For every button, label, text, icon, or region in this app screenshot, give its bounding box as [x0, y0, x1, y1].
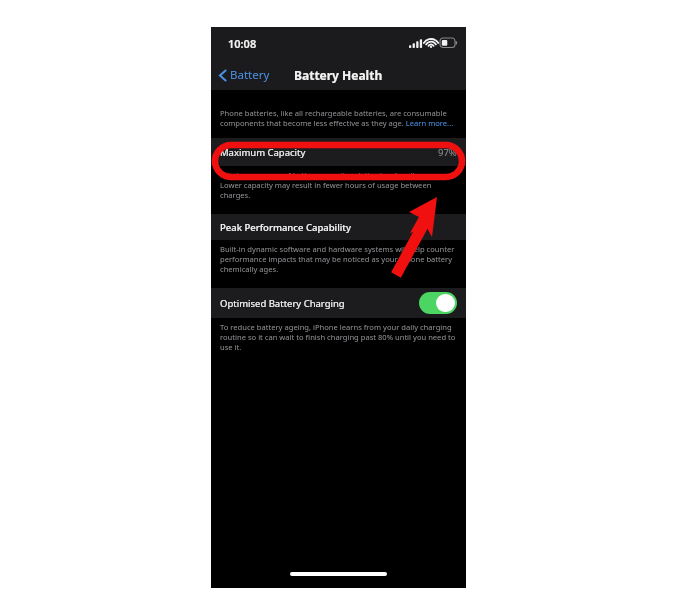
staticText: 10:08 [228, 36, 257, 51]
button[interactable]: Peak Performance Capability [211, 214, 466, 240]
staticText: Battery [230, 67, 270, 83]
staticText: Optimised Battery Charging [220, 297, 345, 310]
staticText: Phone batteries, like all rechargeable b… [220, 108, 457, 128]
staticText: Built-in dynamic software and hardware s… [220, 244, 457, 274]
button[interactable]: Battery [211, 63, 278, 87]
button[interactable]: Maximum Capacity [211, 138, 466, 166]
staticText: To reduce battery ageing, iPhone learns … [220, 322, 457, 352]
staticText: Peak Performance Capability [220, 221, 351, 234]
staticText: 97% [438, 146, 457, 159]
button[interactable]: Optimised Battery Charging toggle, on [419, 292, 457, 314]
staticText: Battery Health [294, 67, 383, 83]
button[interactable]: Optimised Battery Charging [211, 288, 466, 318]
staticText: This is a measure of battery capacity re… [220, 170, 457, 200]
staticText: Maximum Capacity [220, 146, 306, 159]
